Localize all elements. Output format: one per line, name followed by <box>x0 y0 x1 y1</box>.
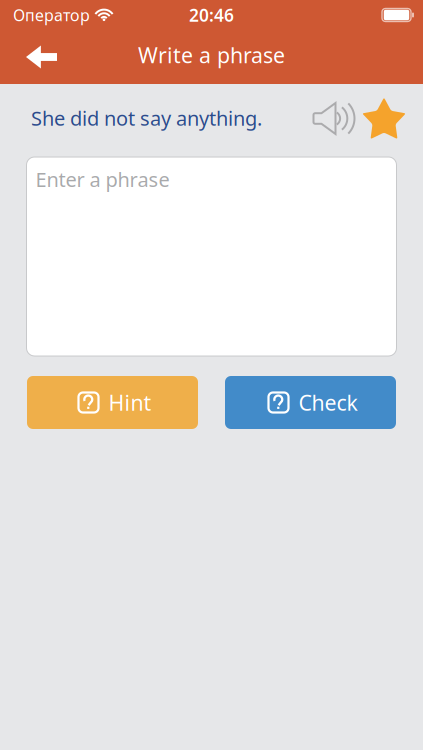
staticText: Оператор <box>13 4 90 26</box>
button[interactable]: Hint <box>27 376 198 429</box>
staticText: Check <box>298 388 357 417</box>
staticText: She did not say anything. <box>31 105 262 131</box>
button[interactable]: Enter a phrase <box>26 157 396 356</box>
staticText: Write a phrase <box>138 41 285 69</box>
staticText: Hint <box>108 388 151 417</box>
staticText: 20:46 <box>189 3 234 26</box>
button[interactable]: Favorite <box>360 96 408 144</box>
button[interactable]: Check <box>225 376 396 429</box>
staticText: Enter a phrase <box>35 166 169 193</box>
button[interactable]: Play pronunciation <box>310 97 358 143</box>
button[interactable]: Back <box>0 30 73 84</box>
